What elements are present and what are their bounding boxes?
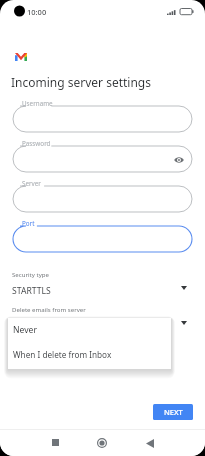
- button[interactable]: Home: [96, 437, 108, 449]
- staticText: STARTTLS: [12, 285, 51, 297]
- button[interactable]: Security type: [0, 269, 205, 297]
- button[interactable]: When I delete from Inbox: [8, 343, 171, 368]
- button[interactable]: Show password: [172, 153, 185, 166]
- staticText: Never: [13, 324, 37, 336]
- staticText: Delete emails from server: [12, 305, 86, 313]
- button[interactable]: Username: [13, 106, 192, 132]
- staticText: Server: [22, 179, 41, 188]
- staticText: When I delete from Inbox: [13, 349, 112, 360]
- button[interactable]: Port: [13, 226, 192, 252]
- button[interactable]: Back: [144, 438, 155, 449]
- button[interactable]: Password: [13, 146, 192, 172]
- staticText: Username: [22, 99, 53, 108]
- staticText: Security type: [12, 270, 49, 278]
- button[interactable]: Never: [8, 318, 171, 343]
- staticText: Password: [22, 139, 51, 148]
- staticText: Never: [12, 320, 36, 332]
- button[interactable]: Server: [13, 186, 192, 212]
- staticText: Port: [22, 219, 35, 228]
- staticText: 10:00: [27, 7, 47, 17]
- staticText: NEXT: [164, 407, 183, 417]
- staticText: Incoming server settings: [11, 74, 151, 90]
- button[interactable]: Delete emails from server: [0, 304, 205, 332]
- button[interactable]: NEXT: [153, 404, 193, 420]
